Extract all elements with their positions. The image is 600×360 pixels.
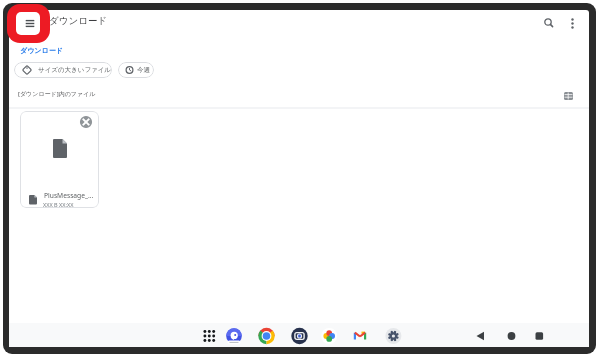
button[interactable]: サイズの大きいファイル (14, 62, 112, 78)
button[interactable] (229, 326, 246, 344)
button[interactable] (564, 14, 580, 32)
button[interactable] (503, 327, 519, 345)
button[interactable] (383, 326, 400, 344)
staticText: ダウンロード (20, 46, 63, 55)
button[interactable] (200, 326, 218, 344)
button[interactable] (16, 12, 40, 35)
staticText: [ダウンロード]内のファイル (18, 90, 96, 98)
button[interactable] (472, 327, 488, 345)
button[interactable] (260, 326, 277, 344)
staticText: PlusMessage_... (44, 191, 94, 200)
staticText: 今週 (137, 66, 150, 74)
button[interactable]: 今週 (118, 62, 154, 78)
button[interactable] (352, 326, 369, 344)
button[interactable] (540, 14, 558, 32)
button[interactable] (14, 42, 64, 54)
staticText: ダウンロード (49, 15, 108, 27)
button[interactable] (291, 326, 308, 344)
button[interactable] (322, 326, 339, 344)
button[interactable] (558, 87, 578, 103)
button[interactable] (20, 111, 99, 208)
button[interactable] (531, 327, 547, 345)
staticText: サイズの大きいファイル (38, 66, 112, 74)
staticText: XXX B XX:XX (43, 201, 74, 208)
